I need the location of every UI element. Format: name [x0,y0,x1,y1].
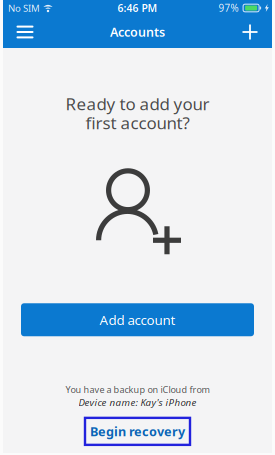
staticText: Add account [99,311,175,329]
button[interactable]: Add account [228,16,272,48]
button[interactable]: Menu [3,16,47,48]
staticText: Device name: Kay's iPhone [78,396,196,409]
staticText: 97% [219,1,239,15]
button[interactable]: Add account [21,303,254,336]
button[interactable]: Begin recovery [85,418,190,445]
staticText: You have a backup on iCloud from [65,383,209,396]
staticText: Accounts [110,23,165,41]
staticText: Begin recovery [90,423,185,440]
staticText: 6:46 PM [117,1,157,15]
staticText: Ready to add your [65,92,209,115]
staticText: first account? [85,111,189,134]
staticText: No SIM [8,1,40,15]
